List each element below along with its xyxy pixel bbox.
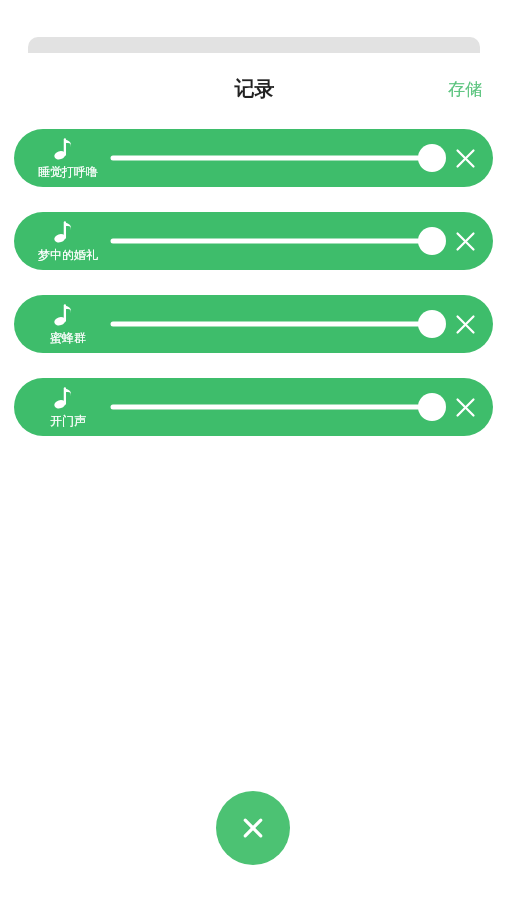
button[interactable]: Volume slider (99, 142, 461, 174)
staticText: 梦中的婚礼 (25, 247, 111, 262)
button[interactable]: 蜜蜂群 (14, 295, 493, 353)
staticText: 开门声 (25, 413, 111, 428)
staticText: 睡觉打呼噜 (25, 164, 111, 179)
button[interactable]: Volume slider (99, 391, 461, 423)
staticText: 记录 (234, 77, 274, 102)
button[interactable]: Remove sound (448, 390, 482, 424)
button[interactable]: Remove sound (448, 307, 482, 341)
button[interactable]: Remove sound (448, 141, 482, 175)
button[interactable]: Volume slider (99, 308, 461, 340)
button[interactable]: 开门声 (14, 378, 493, 436)
button[interactable]: Volume slider (99, 225, 461, 257)
button[interactable]: Close (216, 791, 290, 865)
button[interactable]: Remove sound (448, 224, 482, 258)
button[interactable]: 睡觉打呼噜 (14, 129, 493, 187)
button[interactable]: 存储 (423, 71, 507, 108)
staticText: 蜜蜂群 (25, 330, 111, 345)
button[interactable]: 梦中的婚礼 (14, 212, 493, 270)
staticText: 存储 (448, 79, 482, 100)
